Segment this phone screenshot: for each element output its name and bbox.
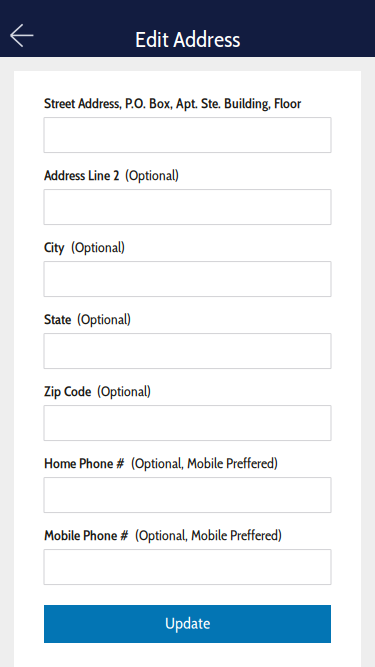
staticText: Zip Code (Optional) [44,383,151,400]
staticText: Street Address, P.O. Box, Apt. Ste. Buil… [44,95,301,112]
staticText: Update [165,613,210,633]
staticText: City (Optional) [44,239,125,256]
staticText: Home Phone # (Optional, Mobile Preffered… [44,455,278,472]
button[interactable]: Back [0,22,44,56]
button[interactable]: Update [44,605,331,643]
staticText: Address Line 2 (Optional) [44,167,179,184]
staticText: Edit Address [135,25,240,53]
staticText: Mobile Phone # (Optional, Mobile Preffer… [44,527,282,544]
staticText: State (Optional) [44,311,131,328]
